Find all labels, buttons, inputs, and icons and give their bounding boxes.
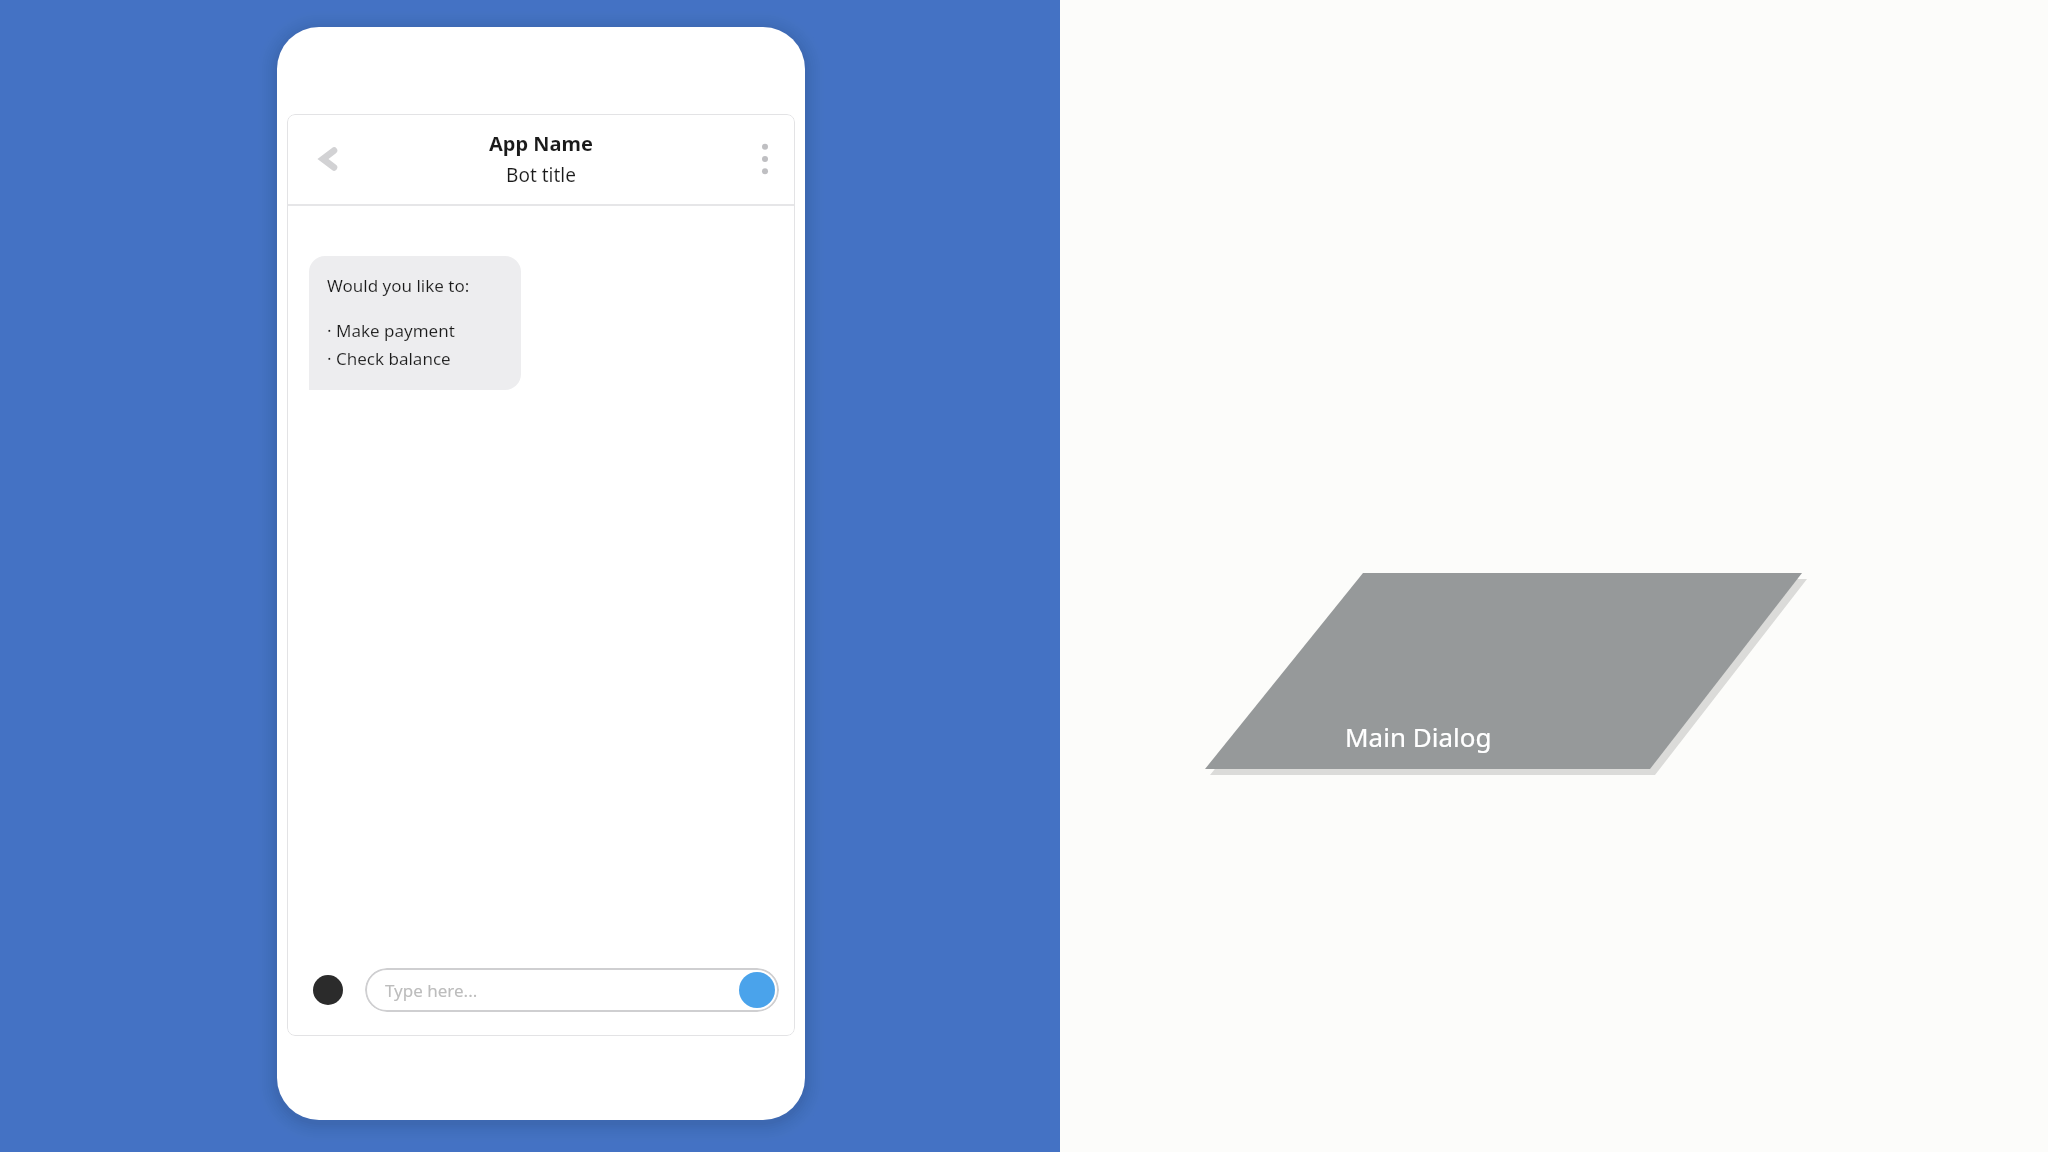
staticText: Bot title	[506, 162, 576, 188]
button[interactable]: Type here...	[365, 968, 779, 1012]
button[interactable]: Main Dialog	[1345, 716, 1545, 756]
button[interactable]: Back	[305, 136, 351, 182]
staticText: Type here...	[385, 979, 478, 1002]
button[interactable]: Send	[739, 972, 775, 1008]
staticText: Would you like to:	[327, 274, 470, 297]
staticText: · Check balance	[327, 347, 451, 370]
staticText: · Make payment	[327, 319, 455, 342]
staticText: App Name	[489, 130, 593, 157]
button[interactable]: More options	[743, 137, 787, 181]
button[interactable]: Profile	[313, 975, 343, 1005]
staticText: Main Dialog	[1345, 719, 1492, 754]
button[interactable]: Would you like to:	[309, 256, 521, 390]
